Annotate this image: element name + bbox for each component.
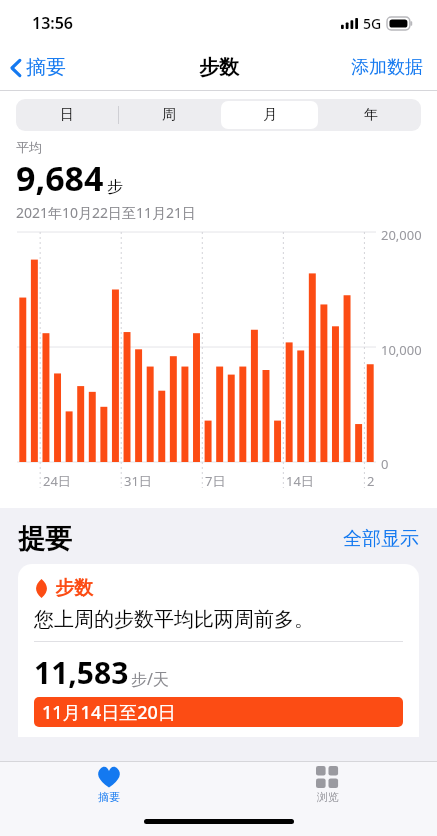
- button[interactable]: 摘要: [0, 51, 74, 84]
- staticText: 摘要: [26, 55, 66, 80]
- button[interactable]: 全部显示: [339, 523, 423, 555]
- staticText: 年: [364, 106, 378, 124]
- staticText: 步/天: [131, 668, 169, 690]
- staticText: 13:56: [32, 12, 74, 34]
- staticText: 24日: [43, 472, 71, 490]
- staticText: 步: [107, 177, 123, 197]
- staticText: 20,000: [381, 226, 422, 244]
- staticText: 7日: [205, 472, 226, 490]
- other: Steps: [34, 579, 49, 598]
- button[interactable]: 摘要: [78, 762, 140, 808]
- staticText: 31日: [124, 472, 152, 490]
- button[interactable]: 添加数据: [337, 50, 437, 85]
- staticText: 月: [263, 106, 277, 124]
- staticText: 摘要: [98, 790, 120, 804]
- staticText: 9,684: [16, 155, 104, 201]
- button[interactable]: 月: [219, 99, 320, 131]
- staticText: 您上周的步数平均比两周前多。: [34, 607, 314, 632]
- staticText: 日: [60, 106, 74, 124]
- staticText: 步数: [199, 55, 239, 80]
- staticText: 步数: [55, 576, 93, 600]
- button[interactable]: 日: [16, 99, 118, 131]
- staticText: 浏览: [317, 790, 339, 804]
- staticText: 平均: [16, 139, 42, 155]
- staticText: 10,000: [381, 341, 422, 359]
- button[interactable]: Steps: [18, 564, 419, 737]
- staticText: 0: [381, 455, 389, 473]
- staticText: 11月14日至20日: [42, 700, 176, 725]
- staticText: 周: [162, 106, 176, 124]
- staticText: 2: [367, 472, 375, 490]
- staticText: 提要: [18, 522, 72, 556]
- staticText: 2021年10月22日至11月21日: [16, 203, 197, 222]
- staticText: 14日: [286, 472, 314, 490]
- button[interactable]: 浏览: [298, 762, 358, 808]
- staticText: 11,583: [34, 652, 129, 693]
- staticText: 5G: [363, 14, 382, 33]
- button[interactable]: 周: [118, 99, 219, 131]
- button[interactable]: 年: [320, 99, 421, 131]
